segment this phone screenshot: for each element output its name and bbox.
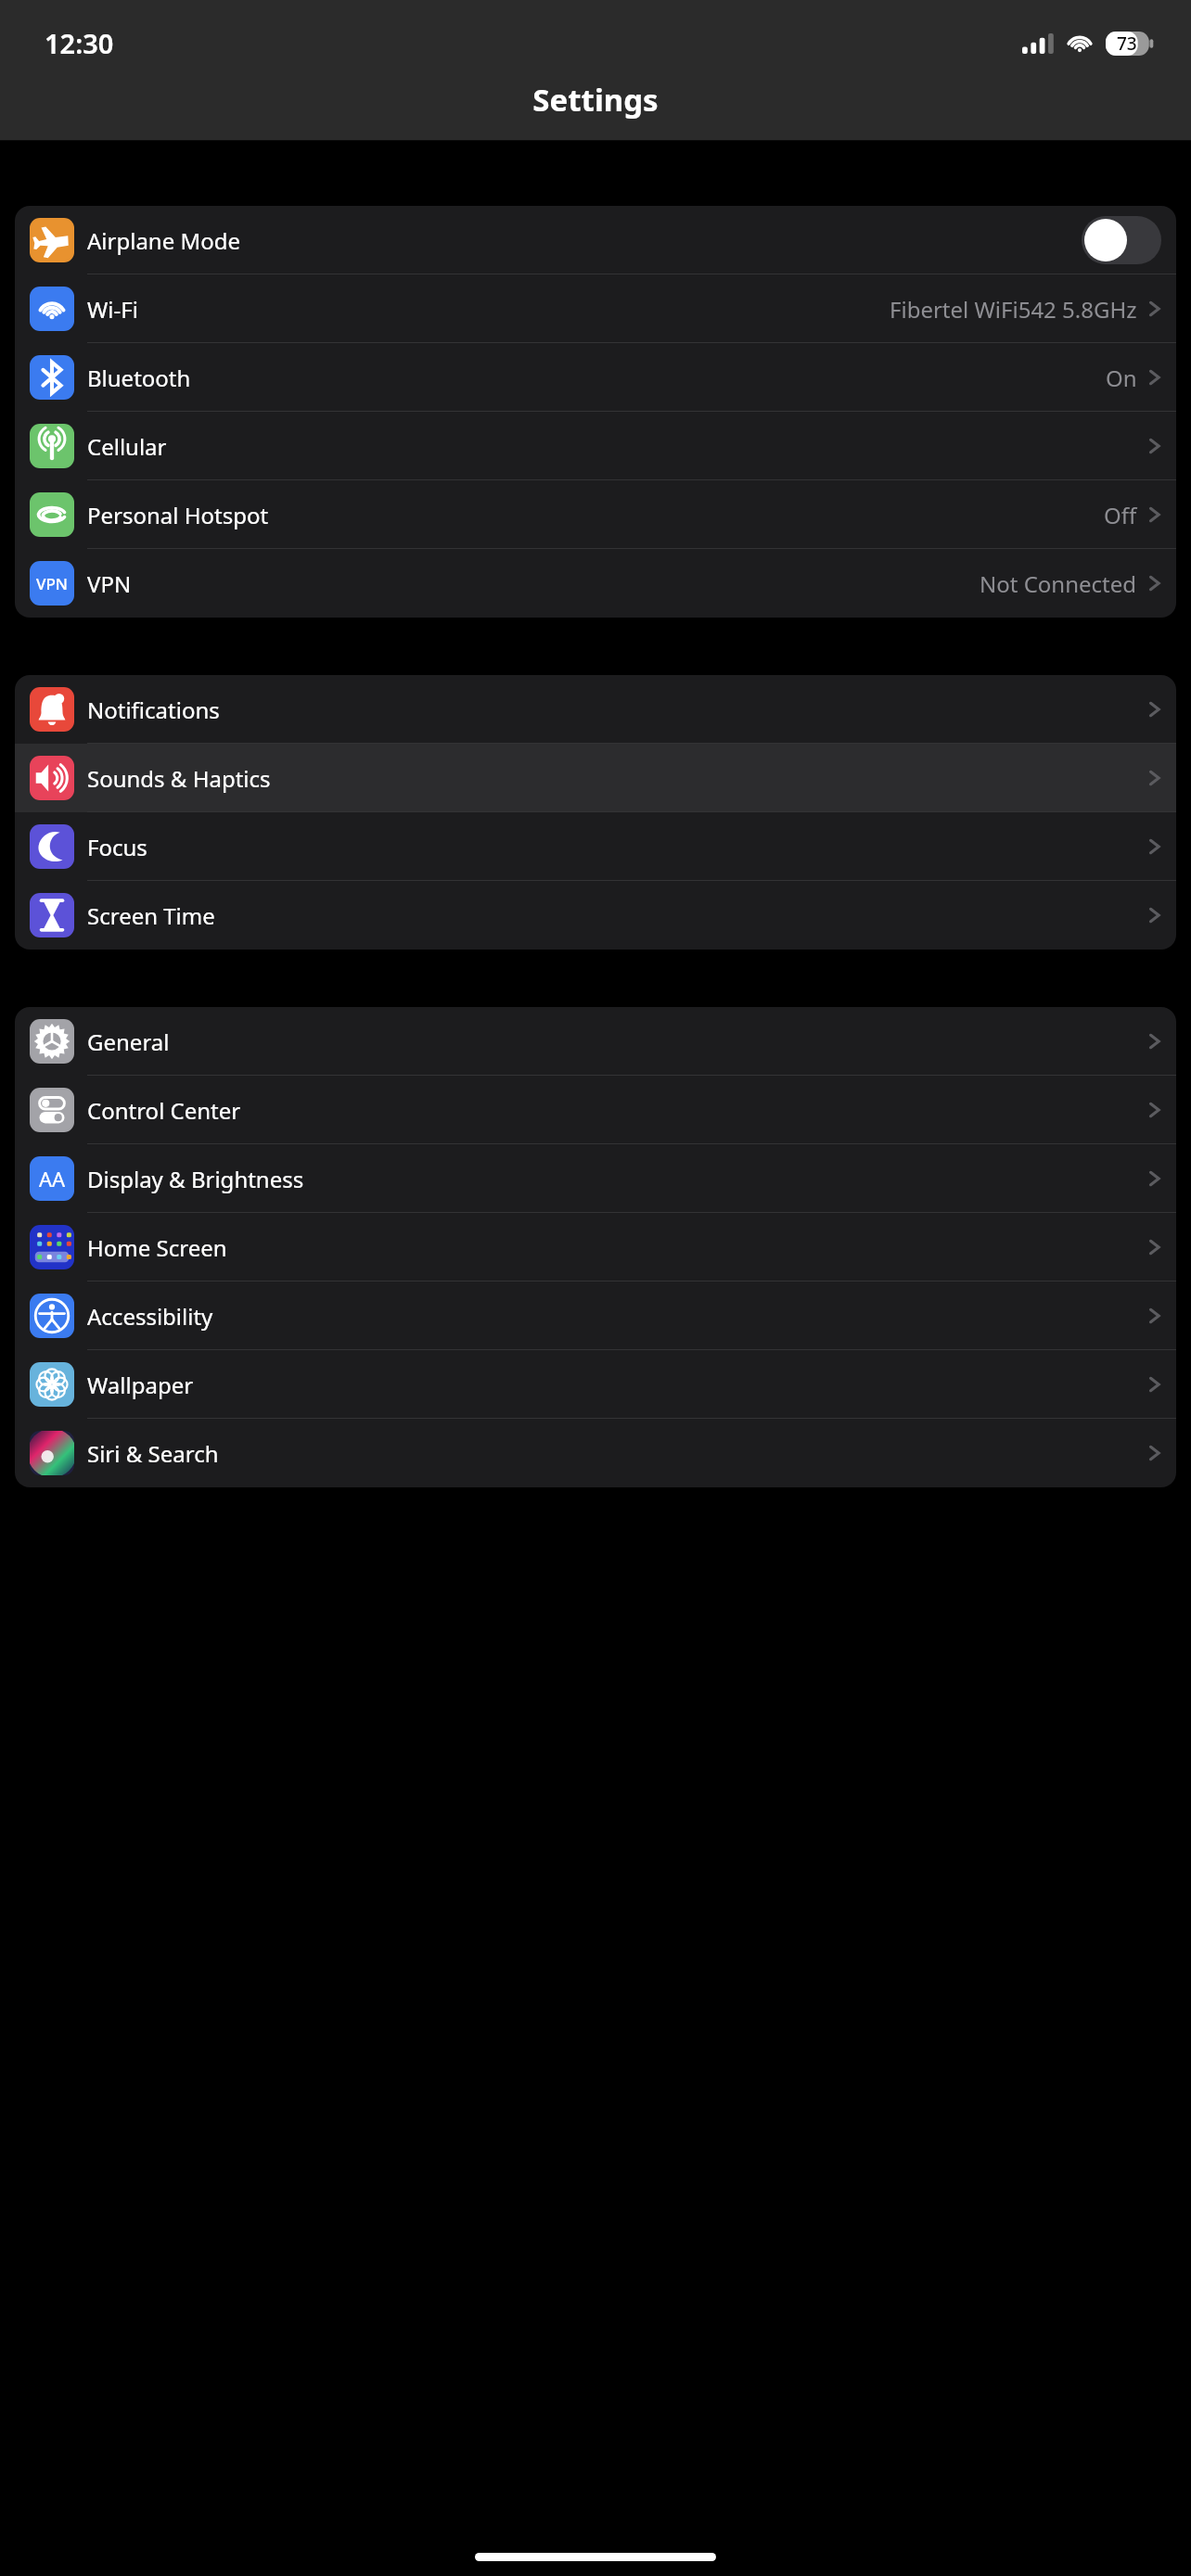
staticText: Home Screen: [87, 1232, 227, 1263]
staticText: Control Center: [87, 1095, 241, 1126]
button[interactable]: Screen Time: [15, 881, 1176, 950]
staticText: Bluetooth: [87, 363, 191, 393]
button[interactable]: Wallpaper: [15, 1350, 1176, 1419]
button[interactable]: Focus: [15, 812, 1176, 881]
staticText: Display & Brightness: [87, 1164, 304, 1194]
button[interactable]: AA: [15, 1144, 1176, 1213]
staticText: Cellular: [87, 431, 167, 462]
staticText: Fibertel WiFi542 5.8GHz: [890, 294, 1137, 325]
staticText: Notifications: [87, 695, 220, 725]
button[interactable]: Wi-Fi: [15, 274, 1176, 343]
staticText: Not Connected: [980, 568, 1137, 599]
button[interactable]: Airplane Mode toggle: [1082, 216, 1161, 264]
staticText: Off: [1104, 500, 1137, 530]
staticText: Siri & Search: [87, 1438, 219, 1469]
staticText: Settings: [532, 79, 659, 121]
button[interactable]: Sounds & Haptics: [15, 744, 1176, 812]
staticText: VPN: [87, 568, 132, 599]
staticText: Focus: [87, 832, 147, 862]
staticText: Personal Hotspot: [87, 500, 269, 530]
staticText: AA: [39, 1165, 66, 1192]
button[interactable]: Bluetooth: [15, 343, 1176, 412]
staticText: General: [87, 1027, 170, 1057]
staticText: VPN: [36, 573, 69, 594]
button[interactable]: General: [15, 1007, 1176, 1076]
staticText: On: [1106, 363, 1137, 393]
staticText: 73: [1117, 32, 1137, 56]
staticText: Wi-Fi: [87, 294, 138, 325]
button[interactable]: Notifications: [15, 675, 1176, 744]
button[interactable]: Airplane Mode: [15, 206, 1176, 274]
button[interactable]: Personal Hotspot: [15, 480, 1176, 549]
button[interactable]: Siri & Search: [15, 1419, 1176, 1487]
button[interactable]: Home Screen: [15, 1213, 1176, 1282]
staticText: Accessibility: [87, 1301, 213, 1332]
staticText: Airplane Mode: [87, 225, 241, 256]
staticText: 12:30: [45, 25, 114, 61]
button[interactable]: VPN: [15, 549, 1176, 618]
staticText: Wallpaper: [87, 1370, 194, 1400]
button[interactable]: Accessibility: [15, 1282, 1176, 1350]
staticText: Screen Time: [87, 900, 215, 931]
button[interactable]: Cellular: [15, 412, 1176, 480]
staticText: Sounds & Haptics: [87, 763, 271, 794]
button[interactable]: Control Center: [15, 1076, 1176, 1144]
